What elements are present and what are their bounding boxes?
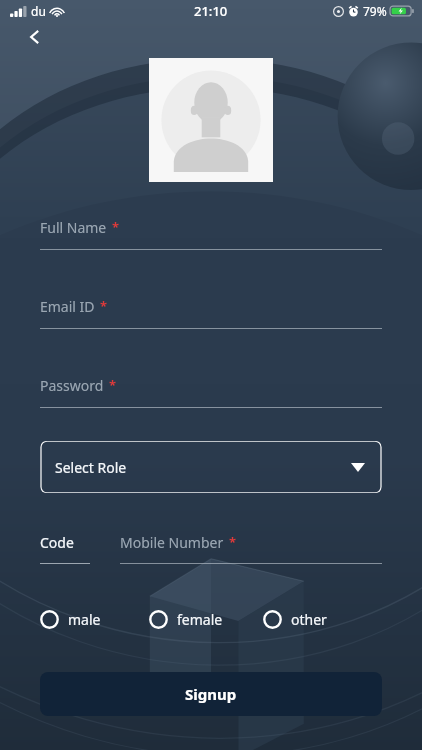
button[interactable]: female: [149, 610, 223, 629]
staticText: female: [177, 610, 223, 629]
button[interactable]: Code: [40, 533, 98, 564]
staticText: Email ID: [40, 297, 95, 316]
button[interactable]: Full Name: [40, 218, 382, 250]
button[interactable]: Mobile Number: [120, 533, 382, 564]
button[interactable]: male: [40, 610, 101, 629]
staticText: du: [31, 3, 46, 19]
staticText: Select Role: [55, 458, 127, 477]
staticText: *: [229, 533, 237, 551]
staticText: Mobile Number: [120, 533, 224, 552]
staticText: male: [68, 610, 101, 629]
button[interactable]: other: [263, 610, 327, 629]
staticText: *: [112, 218, 120, 236]
staticText: Signup: [185, 684, 237, 704]
staticText: 21:10: [194, 2, 228, 20]
button[interactable]: Signup: [40, 672, 382, 716]
staticText: 79%: [363, 3, 387, 19]
staticText: other: [291, 610, 327, 629]
button[interactable]: Password: [40, 376, 382, 408]
button[interactable]: Profile photo: [149, 58, 273, 182]
button[interactable]: Email ID: [40, 297, 382, 329]
button[interactable]: Select Role: [40, 441, 382, 493]
staticText: Password: [40, 376, 104, 395]
button[interactable]: Back: [18, 22, 52, 52]
staticText: Full Name: [40, 218, 107, 237]
staticText: *: [109, 376, 117, 394]
staticText: *: [100, 297, 108, 315]
staticText: Code: [40, 533, 74, 552]
